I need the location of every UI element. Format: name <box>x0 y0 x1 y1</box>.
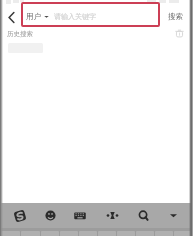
button[interactable]: Sogou input <box>6 203 34 228</box>
button[interactable]: Move cursor <box>98 203 126 228</box>
button[interactable]: Hide keyboard <box>159 203 187 228</box>
staticText: 搜索 <box>168 12 183 21</box>
button[interactable]: 用户 <box>21 2 160 27</box>
button[interactable]: Back <box>1 6 22 29</box>
staticText: 请输入关键字 <box>54 12 96 21</box>
button[interactable]: 搜索 <box>161 6 189 27</box>
staticText: 历史搜索 <box>7 30 33 38</box>
button[interactable]: Emoji <box>36 203 64 228</box>
button[interactable]: Clear search history <box>172 26 187 41</box>
button[interactable]: Keyboard layout <box>66 203 94 228</box>
button[interactable]: Search <box>130 203 158 228</box>
staticText: 用户 <box>26 12 41 21</box>
